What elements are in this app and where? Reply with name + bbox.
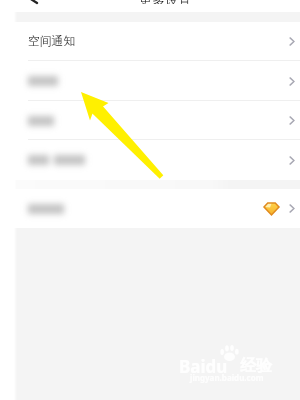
button[interactable] <box>0 61 300 101</box>
staticText: Baidu <box>179 355 228 378</box>
button[interactable] <box>0 140 300 180</box>
staticText: 更多设置 <box>139 0 191 4</box>
button[interactable]: 空间通知 <box>0 22 300 61</box>
staticText: 空间通知 <box>28 34 76 49</box>
button[interactable] <box>0 189 300 228</box>
staticText: 经验 <box>240 356 272 376</box>
staticText: jingyan.baidu.com <box>190 372 264 383</box>
button[interactable]: Back <box>0 0 48 12</box>
button[interactable] <box>0 101 300 140</box>
